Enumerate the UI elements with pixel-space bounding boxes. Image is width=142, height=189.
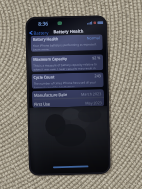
staticText: March 2023 <box>81 91 102 97</box>
staticText: Normal <box>86 35 101 40</box>
button[interactable]: Maximum Capacity <box>31 54 103 72</box>
staticText: Battery Health <box>53 29 83 35</box>
staticText: Cycle Count <box>33 74 55 80</box>
staticText: Maximum Capacity <box>33 56 67 62</box>
staticText: 243 <box>94 73 102 78</box>
button[interactable]: Manufacture Date <box>32 89 104 99</box>
button[interactable]: Battery Health <box>30 34 103 52</box>
button[interactable]: Back to Battery <box>29 29 49 36</box>
staticText: The number of times iPhone has used all … <box>34 80 102 88</box>
staticText: First Use <box>34 101 50 107</box>
staticText: 8:36 <box>38 20 48 28</box>
staticText: May 2023 <box>85 100 102 106</box>
button[interactable]: First Use <box>32 98 104 108</box>
staticText: Manufacture Date <box>34 92 68 98</box>
staticText: This is a measure of battery capacity re… <box>33 62 101 71</box>
staticText: Battery <box>33 29 49 36</box>
staticText: 92 % <box>92 55 101 60</box>
staticText: Your iPhone battery is performing as exp… <box>33 42 101 51</box>
staticText: Battery Health <box>33 36 59 42</box>
button[interactable]: Cycle Count <box>31 72 104 89</box>
